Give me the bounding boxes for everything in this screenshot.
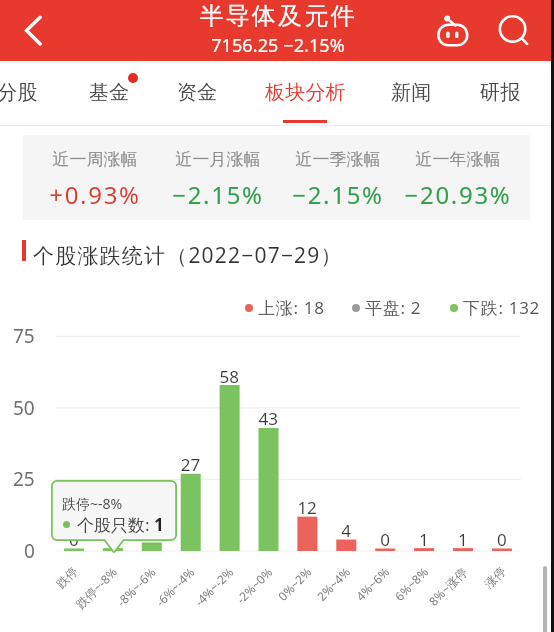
- staticText: 平盘: 2: [365, 296, 422, 319]
- staticText: 上涨: 18: [258, 296, 325, 319]
- button[interactable]: 新闻: [378, 64, 444, 120]
- button[interactable]: 板块分析: [251, 64, 359, 120]
- button[interactable]: Assistant: [428, 5, 476, 53]
- staticText: 半导体及元件: [1, 1, 554, 31]
- staticText: 近一月涨幅: [138, 149, 298, 170]
- staticText: −20.93%: [378, 178, 538, 211]
- staticText: 下跌: 132: [463, 296, 541, 319]
- staticText: +0.93%: [15, 178, 175, 211]
- staticText: 基金: [89, 80, 130, 105]
- staticText: 研报: [480, 80, 521, 105]
- button[interactable]: Back: [6, 6, 54, 54]
- staticText: 成分股: [0, 80, 38, 105]
- staticText: 个股只数:: [77, 513, 154, 536]
- staticText: 新闻: [391, 80, 432, 105]
- button[interactable]: 基金: [76, 64, 142, 120]
- staticText: 近一年涨幅: [378, 149, 538, 170]
- staticText: −2.15%: [258, 178, 418, 211]
- button[interactable]: 成分股: [0, 64, 50, 120]
- staticText: 1: [154, 513, 164, 536]
- staticText: 近一季涨幅: [258, 149, 418, 170]
- button[interactable]: 资金: [164, 64, 230, 120]
- staticText: 板块分析: [265, 80, 346, 105]
- button[interactable]: 研报: [467, 64, 533, 120]
- staticText: 跌停~-8%: [62, 494, 123, 513]
- staticText: 7156.25 −2.15%: [1, 33, 554, 58]
- staticText: −2.15%: [138, 178, 298, 211]
- staticText: 个股涨跌统计（2022−07−29）: [33, 241, 343, 270]
- button[interactable]: Search: [489, 5, 537, 53]
- staticText: 资金: [177, 80, 218, 105]
- staticText: 近一周涨幅: [15, 149, 175, 170]
